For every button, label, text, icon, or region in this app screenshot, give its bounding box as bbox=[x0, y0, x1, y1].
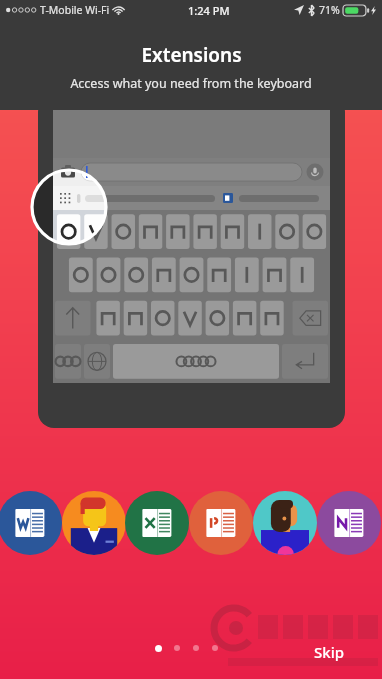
button[interactable] bbox=[193, 645, 199, 651]
button[interactable]: Skip bbox=[308, 639, 350, 665]
staticText: Extensions bbox=[141, 42, 242, 68]
staticText: Access what you need from the keyboard bbox=[70, 75, 312, 92]
staticText: 1:24 PM bbox=[188, 3, 230, 18]
staticText: T-Mobile Wi-Fi bbox=[40, 3, 110, 17]
button[interactable] bbox=[155, 645, 162, 652]
button[interactable] bbox=[212, 645, 218, 651]
staticText: Skip bbox=[314, 642, 344, 662]
button[interactable] bbox=[174, 645, 180, 651]
staticText: 71% bbox=[319, 3, 340, 17]
